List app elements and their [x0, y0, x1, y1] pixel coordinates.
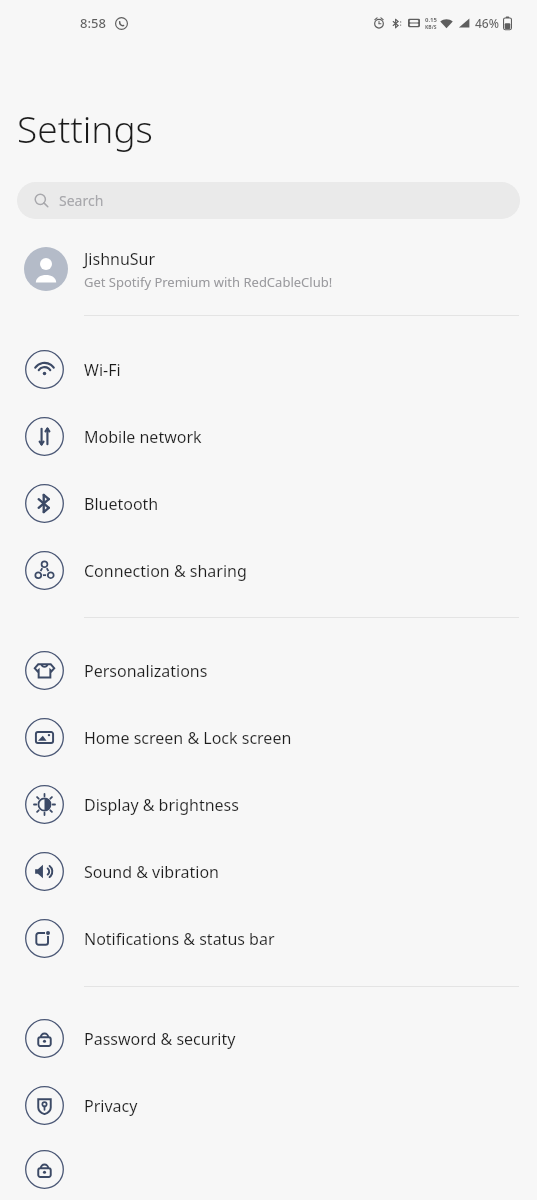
button[interactable]: Wi-Fi	[0, 336, 537, 403]
other: Personalizations	[25, 651, 64, 690]
button[interactable]: Search	[17, 182, 520, 219]
staticText: Home screen & Lock screen	[84, 727, 292, 749]
button[interactable]: Password and security	[0, 1005, 537, 1072]
button[interactable]: Mobile network	[0, 403, 537, 470]
button[interactable]: Display and brightness	[0, 771, 537, 838]
staticText: 0.15	[425, 16, 437, 24]
other: Home screen and Lock screen	[25, 718, 64, 757]
button[interactable]: Sound and vibration	[0, 838, 537, 905]
staticText: Sound & vibration	[84, 861, 219, 883]
button[interactable]: Password and security	[0, 1139, 537, 1200]
button[interactable]: Bluetooth	[0, 470, 537, 537]
other: Password and security	[25, 1019, 64, 1058]
staticText: 46%	[475, 15, 499, 31]
staticText: Connection & sharing	[84, 560, 247, 582]
button[interactable]: Personalizations	[0, 637, 537, 704]
staticText: Settings	[17, 103, 153, 153]
other: Sound and vibration	[25, 852, 64, 891]
staticText: Notifications & status bar	[84, 928, 275, 950]
other: Connection and sharing	[25, 551, 64, 590]
staticText: Personalizations	[84, 660, 208, 682]
staticText: KB/S	[425, 24, 437, 31]
button[interactable]: Connection and sharing	[0, 537, 537, 604]
button[interactable]: Privacy	[0, 1072, 537, 1139]
staticText: Search	[59, 191, 104, 210]
staticText: Password & security	[84, 1028, 236, 1050]
staticText: Bluetooth	[84, 493, 159, 515]
other: Bluetooth	[25, 484, 64, 523]
button[interactable]: Notifications and status bar	[0, 905, 537, 972]
button[interactable]: Home screen and Lock screen	[0, 704, 537, 771]
other: Password and security	[25, 1150, 64, 1189]
staticText: JishnuSur	[84, 248, 156, 270]
staticText: Mobile network	[84, 426, 202, 448]
staticText: Wi-Fi	[84, 359, 121, 381]
other: Display and brightness	[25, 785, 64, 824]
other: Mobile network	[25, 417, 64, 456]
staticText: Display & brightness	[84, 794, 239, 816]
staticText: Get Spotify Premium with RedCableClub!	[84, 273, 333, 291]
button[interactable]: JishnuSur	[0, 243, 537, 295]
staticText: 8:58	[80, 14, 106, 32]
other: Privacy	[25, 1086, 64, 1125]
staticText: Privacy	[84, 1095, 138, 1117]
other: Notifications and status bar	[25, 919, 64, 958]
other: Wi-Fi	[25, 350, 64, 389]
